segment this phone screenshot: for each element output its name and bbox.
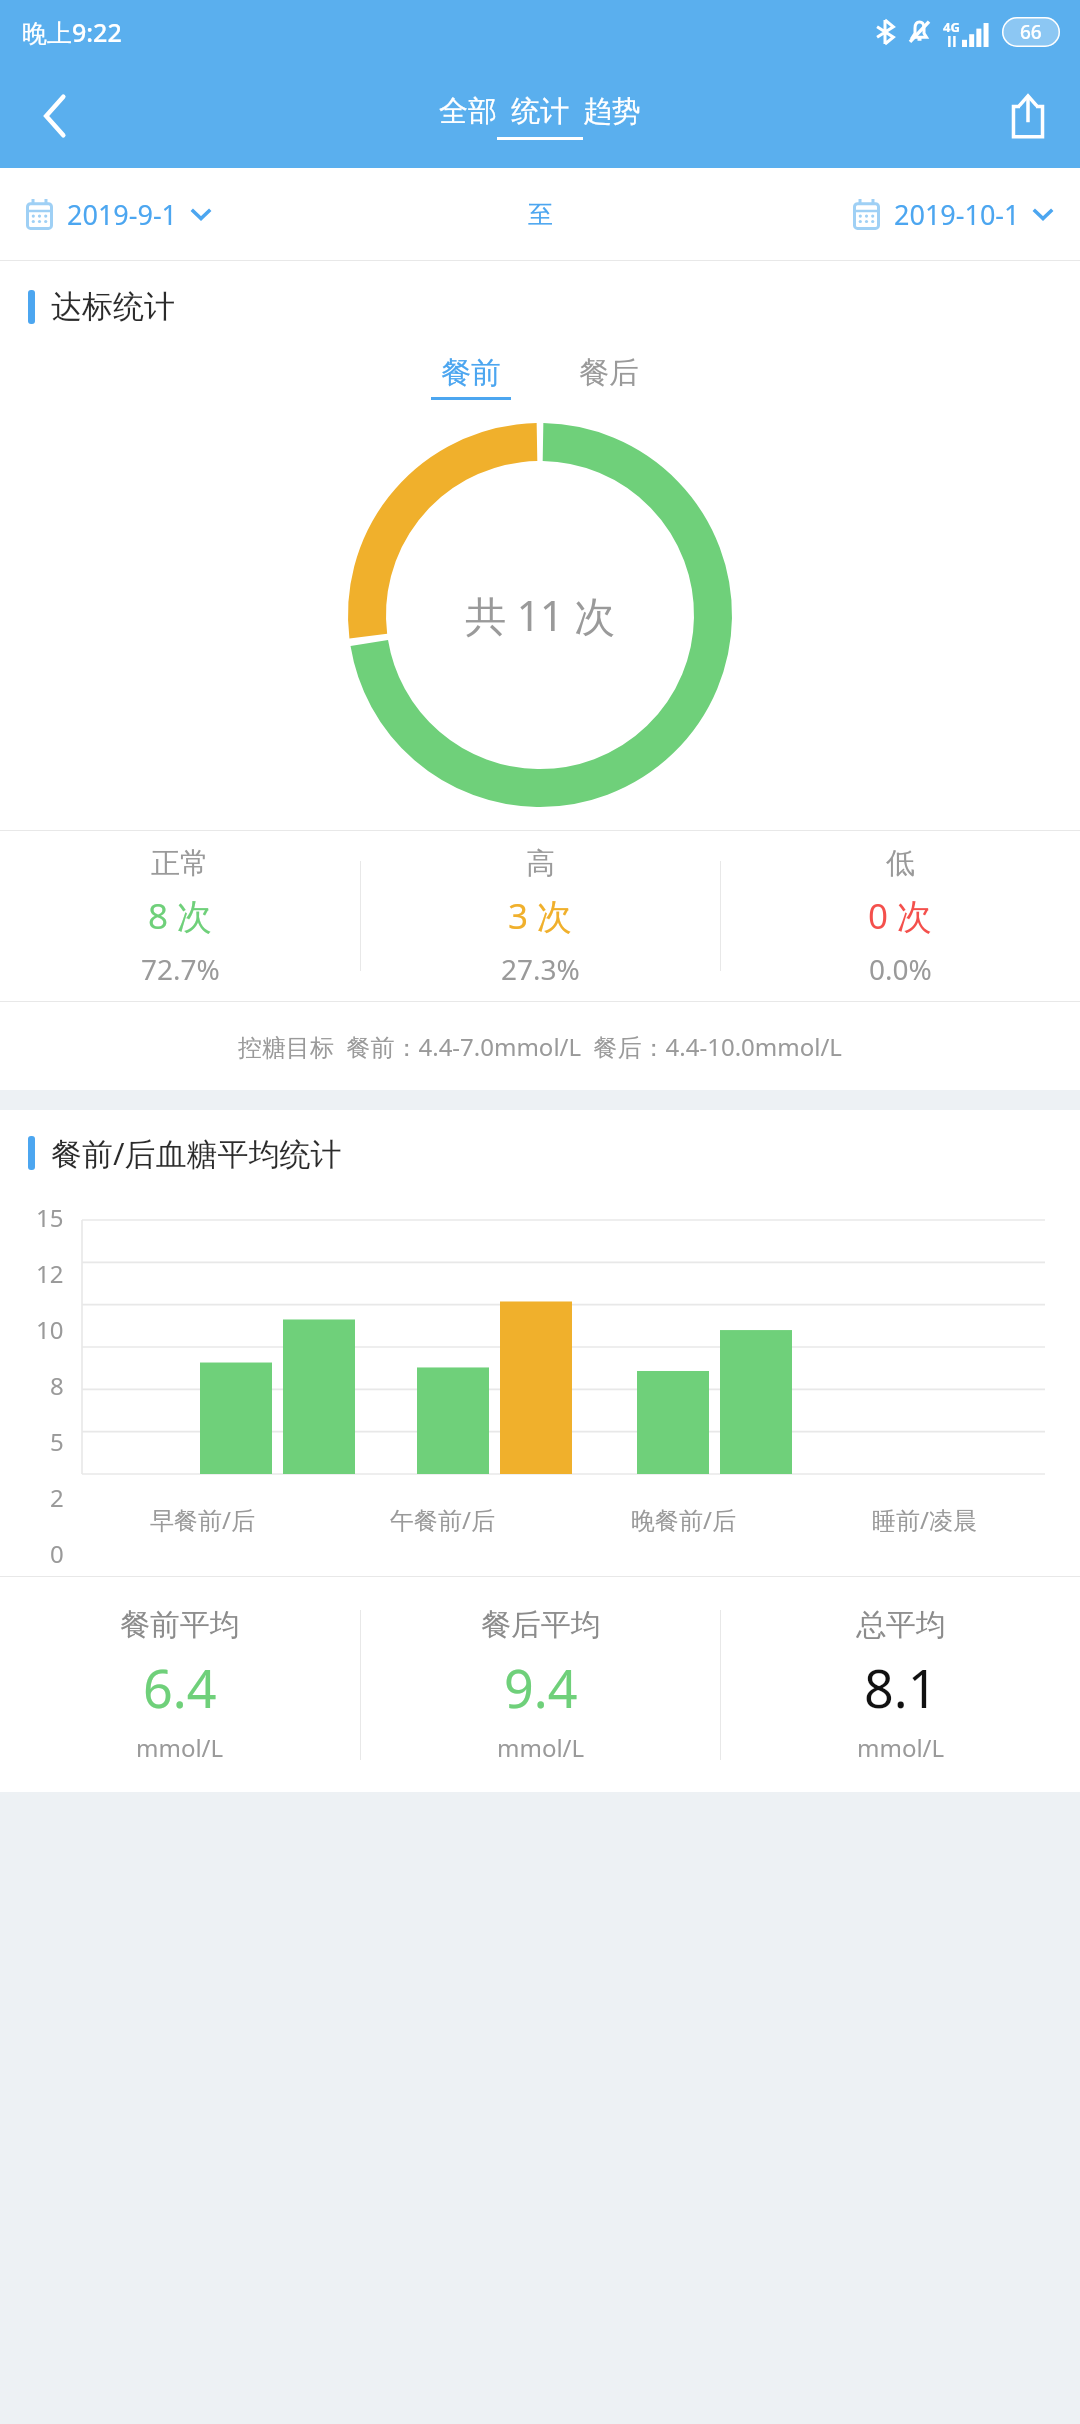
staticText: 餐后平均	[481, 1606, 601, 1644]
staticText: 0.0%	[869, 950, 932, 988]
staticText: 4G	[943, 18, 960, 36]
button[interactable]: Back	[0, 64, 110, 168]
staticText: 8	[50, 1369, 64, 1402]
button[interactable]: 统计	[497, 64, 583, 168]
staticText: 晚餐前/后	[631, 1503, 736, 1536]
button[interactable]: Share	[976, 64, 1080, 168]
staticText: 9.4	[504, 1652, 578, 1723]
staticText: mmol/L	[497, 1731, 585, 1764]
staticText: 66	[1020, 19, 1042, 45]
staticText: 15	[36, 1201, 64, 1234]
button[interactable]: 2019-9-1	[0, 168, 480, 260]
staticText: 晚上9:22	[22, 15, 122, 49]
button[interactable]: 低	[721, 831, 1080, 1001]
staticText: 2	[50, 1481, 64, 1514]
button[interactable]: 正常	[0, 831, 360, 1001]
staticText: 0	[50, 1537, 64, 1570]
staticText: 12	[36, 1257, 64, 1290]
staticText: 2019-10-1	[894, 196, 1020, 233]
staticText: 0 次	[868, 892, 933, 940]
button[interactable]: 高	[361, 831, 720, 1001]
staticText: 餐前/后血糖平均统计	[51, 1132, 342, 1174]
button[interactable]: 餐后	[563, 354, 655, 400]
staticText: 早餐前/后	[150, 1503, 255, 1536]
staticText: 达标统计	[51, 287, 175, 326]
staticText: 控糖目标 餐前：4.4-7.0mmol/L 餐后：4.4-10.0mmol/L	[238, 1030, 842, 1063]
button[interactable]: 餐前平均	[0, 1577, 360, 1792]
staticText: mmol/L	[857, 1731, 945, 1764]
staticText: 8.1	[864, 1652, 938, 1723]
button[interactable]: 全部	[439, 64, 497, 168]
staticText: 睡前/凌晨	[872, 1503, 977, 1536]
staticText: 餐前	[441, 354, 501, 392]
staticText: 共 11 次	[465, 587, 616, 643]
staticText: 10	[36, 1313, 64, 1346]
staticText: 餐前平均	[120, 1606, 240, 1644]
button[interactable]: 总平均	[721, 1577, 1080, 1792]
staticText: 2019-9-1	[67, 196, 178, 233]
staticText: 5	[50, 1425, 64, 1458]
staticText: 高	[526, 845, 555, 882]
staticText: 正常	[151, 845, 209, 882]
staticText: 3 次	[508, 892, 573, 940]
staticText: 低	[886, 845, 915, 882]
staticText: 27.3%	[501, 950, 580, 988]
staticText: 全部	[439, 93, 497, 130]
button[interactable]: 2019-10-1	[600, 168, 1080, 260]
staticText: 餐后	[579, 354, 639, 392]
staticText: 总平均	[856, 1606, 946, 1644]
staticText: 72.7%	[141, 950, 220, 988]
staticText: 至	[528, 199, 553, 230]
staticText: 8 次	[148, 892, 213, 940]
staticText: 趋势	[583, 93, 641, 130]
button[interactable]: 餐后平均	[361, 1577, 720, 1792]
staticText: 统计	[511, 93, 569, 130]
staticText: 午餐前/后	[390, 1503, 495, 1536]
button[interactable]: 餐前	[425, 354, 517, 400]
staticText: mmol/L	[136, 1731, 224, 1764]
button[interactable]: 趋势	[583, 64, 641, 168]
staticText: 6.4	[143, 1652, 217, 1723]
